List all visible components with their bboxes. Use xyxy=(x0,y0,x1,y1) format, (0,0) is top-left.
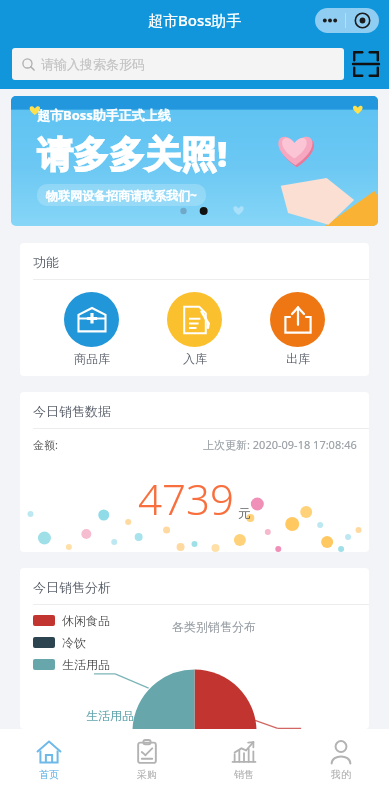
staticText: 采购 xyxy=(137,768,157,781)
staticText: 功能 xyxy=(33,254,59,270)
staticText: 休闲食品 xyxy=(62,613,110,628)
staticText: 超市Boss助手正式上线 xyxy=(37,106,171,124)
staticText: 今日销售分析 xyxy=(33,579,111,595)
staticText: 上次更新: 2020-09-18 17:08:46 xyxy=(203,437,357,452)
button[interactable]: 首页 xyxy=(0,729,98,791)
button[interactable]: 采购 xyxy=(98,729,195,791)
staticText: 生活用品 xyxy=(86,708,134,723)
staticText: 4739 xyxy=(138,470,234,527)
staticText: 元 xyxy=(238,505,251,521)
staticText: 金额: xyxy=(33,437,58,452)
staticText: 今日销售数据 xyxy=(33,403,111,419)
staticText: 物联网设备招商请联系我们~ xyxy=(46,187,197,203)
button[interactable]: More and close xyxy=(315,8,379,33)
staticText: 各类别销售分布 xyxy=(172,619,256,634)
staticText: 首页 xyxy=(39,768,59,781)
button[interactable]: 请输入搜索条形码 xyxy=(12,48,344,80)
staticText: 入库 xyxy=(183,351,207,366)
staticText: 我的 xyxy=(331,768,351,781)
button[interactable]: Scan barcode xyxy=(353,51,379,77)
staticText: 生活用品 xyxy=(62,657,110,672)
button[interactable]: 销售 xyxy=(195,729,292,791)
button[interactable]: 商品库 xyxy=(60,292,123,366)
staticText: 超市Boss助手 xyxy=(148,10,242,30)
staticText: 请输入搜索条形码 xyxy=(41,56,145,72)
button[interactable]: 超市Boss助手正式上线 xyxy=(11,96,378,226)
staticText: 商品库 xyxy=(74,351,110,366)
button[interactable]: 出库 xyxy=(266,292,329,366)
button[interactable]: 我的 xyxy=(292,729,389,791)
button[interactable]: 入库 xyxy=(163,292,226,366)
staticText: 出库 xyxy=(286,351,310,366)
staticText: 销售 xyxy=(234,768,254,781)
staticText: 冷饮 xyxy=(62,635,86,650)
staticText: 请多多关照! xyxy=(37,129,228,178)
